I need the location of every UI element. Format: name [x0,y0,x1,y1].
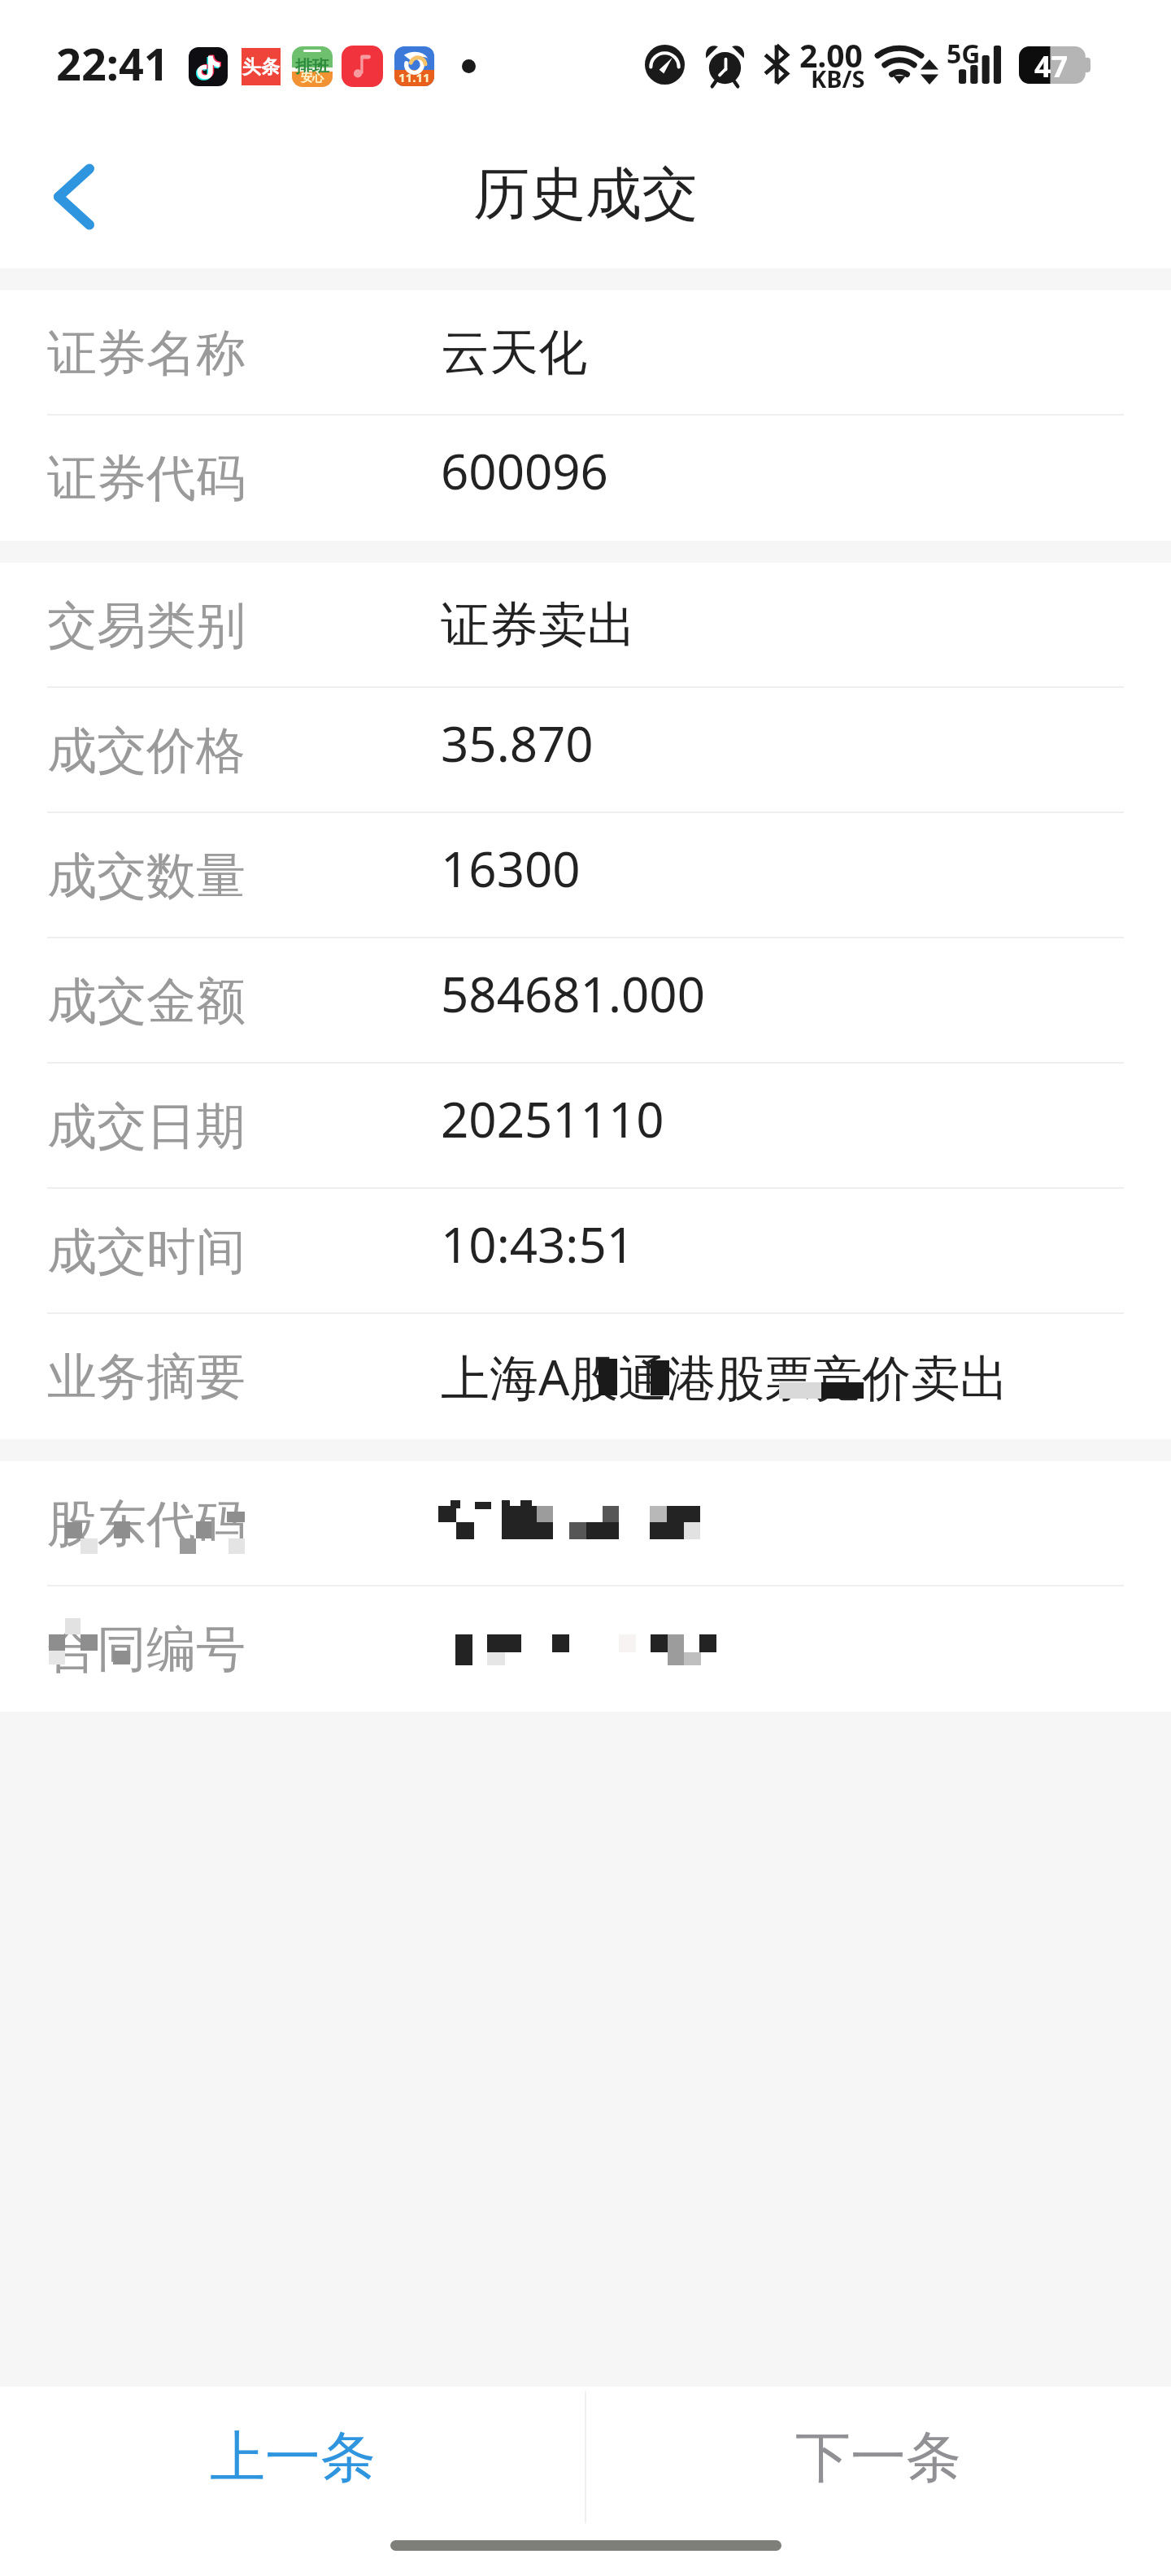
staticText: 47 [1034,46,1069,86]
staticText: KB/S [811,63,865,94]
staticText: 16300 [441,835,581,902]
staticText: 历史成交 [473,159,698,230]
staticText: 20251110 [441,1086,664,1152]
staticText: 股东代码 [47,1493,246,1556]
staticText: 成交时间 [47,1221,246,1283]
staticText: 证券名称 [47,322,246,385]
staticText: 安心 [301,71,324,85]
button[interactable]: 下一条 [585,2387,1171,2576]
staticText: 22:41 [56,33,169,94]
staticText: 5G [947,36,981,72]
staticText: 下一条 [795,2423,961,2493]
staticText: 业务摘要 [47,1346,246,1408]
staticText: 证券卖出 [441,594,636,656]
staticText: 交易类别 [47,594,246,657]
staticText: 584681.000 [441,960,705,1027]
staticText: 成交金额 [47,970,246,1033]
staticText: 2.00 [799,33,863,76]
staticText: 证券代码 [47,447,246,510]
staticText: 头条 [242,55,280,79]
staticText: 成交日期 [47,1095,246,1158]
staticText: 600096 [441,437,608,504]
staticText: 云天化 [441,322,587,384]
button[interactable]: 上一条 [0,2387,585,2576]
staticText: 35.870 [441,710,594,777]
staticText: 合同编号 [47,1618,246,1681]
button[interactable]: Back [0,130,122,252]
staticText: 上海A股通港股票竞价卖出 [441,1343,1009,1410]
staticText: 11.11 [398,69,430,85]
staticText: 10:43:51 [441,1211,635,1277]
staticText: 排班 [295,56,329,77]
staticText: 成交价格 [47,720,246,782]
staticText: 成交数量 [47,845,246,907]
staticText: 上一条 [210,2423,376,2493]
